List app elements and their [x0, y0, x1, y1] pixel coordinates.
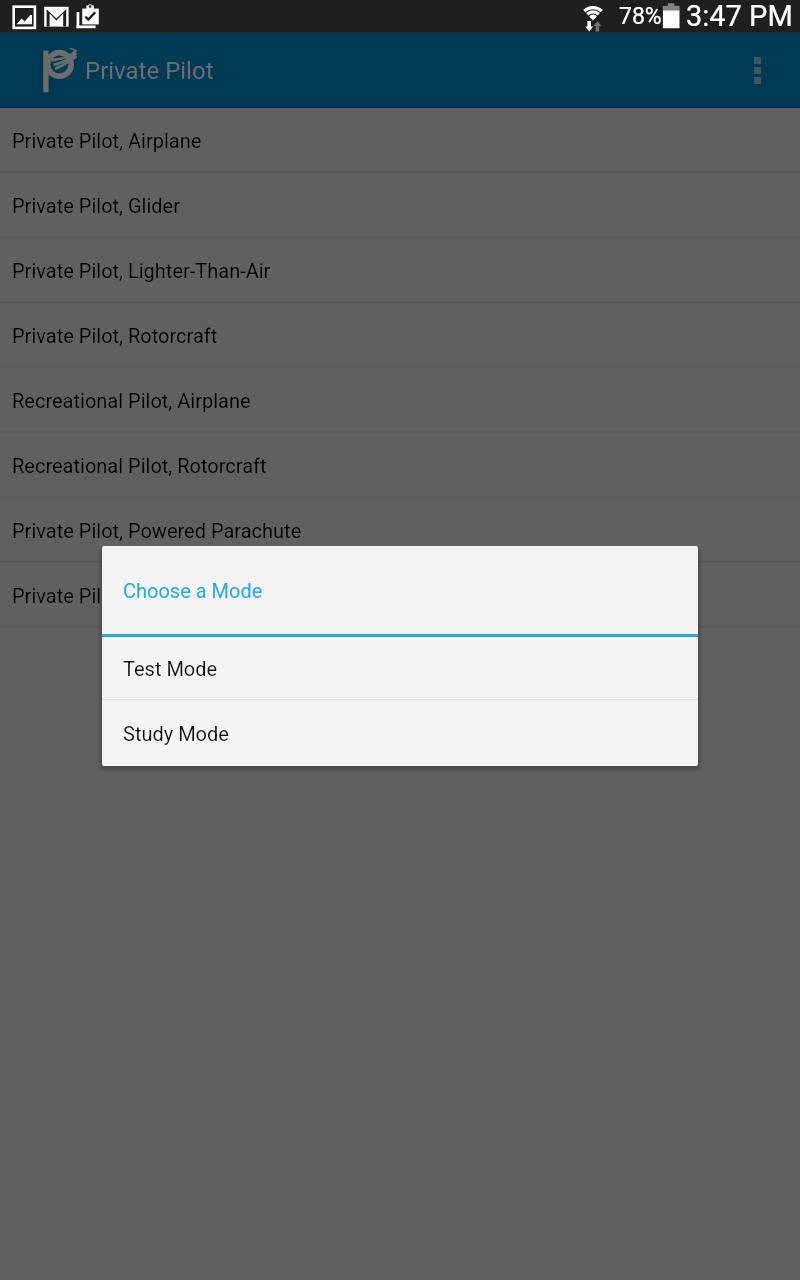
staticText: 3:47 PM: [686, 0, 793, 32]
staticText: Private Pilot, Lighter-Than-Air: [12, 259, 271, 282]
button[interactable]: Private Pilot, Glider: [0, 173, 800, 238]
staticText: Private Pilot, Airplane: [12, 129, 202, 152]
button[interactable]: Recreational Pilot, Airplane: [0, 368, 800, 433]
staticText: 78%: [619, 3, 662, 30]
staticText: Test Mode: [123, 657, 218, 680]
button[interactable]: Private Pilot, Lighter-Than-Air: [0, 238, 800, 303]
button[interactable]: More options: [733, 46, 781, 94]
button[interactable]: Test Mode: [102, 637, 698, 700]
staticText: Choose a Mode: [123, 579, 263, 602]
button[interactable]: Private Pilot, Airplane: [0, 108, 800, 173]
button[interactable]: Private Pilot, Weight-Shift Control: [0, 563, 800, 628]
staticText: Private Pilot: [85, 57, 214, 85]
button[interactable]: Recreational Pilot, Rotorcraft: [0, 433, 800, 498]
button[interactable]: Private Pilot, Rotorcraft: [0, 303, 800, 368]
button[interactable]: Study Mode: [102, 700, 698, 766]
staticText: Private Pilot, Weight-Shift Control: [12, 584, 307, 607]
staticText: Private Pilot, Glider: [12, 194, 180, 217]
staticText: Recreational Pilot, Airplane: [12, 389, 251, 412]
staticText: Study Mode: [123, 722, 229, 745]
staticText: Recreational Pilot, Rotorcraft: [12, 454, 267, 477]
staticText: Private Pilot, Powered Parachute: [12, 519, 302, 542]
staticText: Private Pilot, Rotorcraft: [12, 324, 218, 347]
button[interactable]: Private Pilot, Powered Parachute: [0, 498, 800, 563]
